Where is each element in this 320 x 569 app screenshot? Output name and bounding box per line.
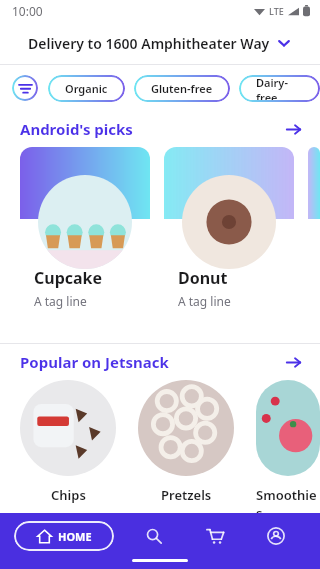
button[interactable]: Smoothies: [256, 380, 320, 522]
staticText: Pretzels: [161, 486, 212, 504]
staticText: Cupcake: [34, 267, 103, 289]
button[interactable]: Dairy-free: [239, 75, 320, 102]
staticText: HOME: [58, 529, 92, 544]
button[interactable]: HOME: [14, 521, 114, 551]
staticText: Smoothies: [256, 486, 320, 522]
staticText: A tag line: [178, 293, 231, 309]
button[interactable]: Filters: [12, 75, 38, 101]
button[interactable]: Search: [134, 516, 174, 556]
button[interactable]: Cupcake: [20, 147, 150, 323]
staticText: Android's picks: [20, 119, 282, 139]
button[interactable]: See more: [282, 351, 304, 373]
button[interactable]: Donut: [164, 147, 294, 323]
staticText: Donut: [178, 267, 228, 289]
button[interactable]: Eclair: [308, 147, 320, 323]
staticText: Dairy-free: [256, 75, 303, 102]
button[interactable]: Organic: [48, 75, 125, 102]
button[interactable]: Gluten-free: [134, 75, 230, 102]
staticText: 10:00: [12, 3, 43, 19]
other: Expand: [276, 35, 292, 51]
button[interactable]: Cart: [195, 516, 235, 556]
staticText: Delivery to 1600 Amphitheater Way: [28, 34, 276, 53]
button[interactable]: See more: [282, 118, 304, 140]
staticText: LTE: [269, 5, 284, 17]
staticText: Organic: [65, 81, 108, 96]
staticText: Popular on Jetsnack: [20, 352, 282, 372]
button[interactable]: Pretzels: [138, 380, 234, 504]
staticText: Gluten-free: [151, 81, 213, 96]
button[interactable]: Delivery to 1600 Amphitheater Way: [0, 22, 320, 64]
button[interactable]: Chips: [20, 380, 116, 504]
staticText: Chips: [51, 486, 86, 504]
staticText: A tag line: [34, 293, 87, 309]
button[interactable]: Profile: [256, 516, 296, 556]
